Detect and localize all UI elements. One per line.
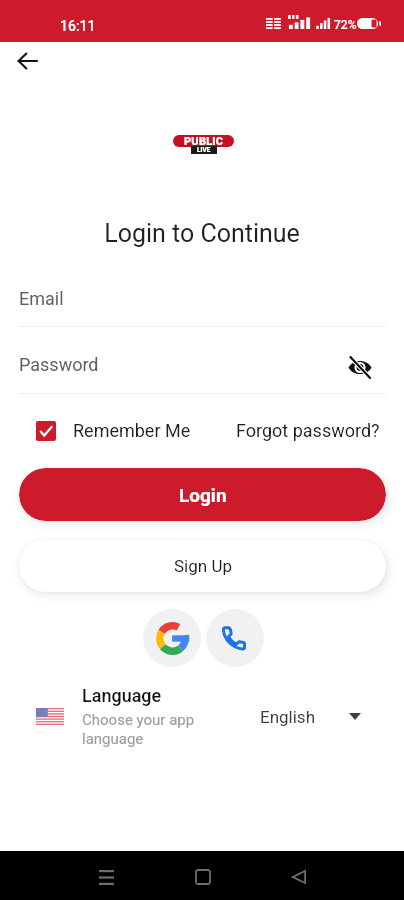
staticText: Forgot password? <box>236 420 380 441</box>
button[interactable]: Recent apps <box>82 853 130 900</box>
staticText: Login <box>179 484 227 506</box>
button[interactable]: Forgot password? <box>236 418 380 443</box>
staticText: Language <box>82 685 162 706</box>
staticText: 72% <box>334 18 357 32</box>
button[interactable]: Remember Me <box>36 420 191 441</box>
staticText: LIVE <box>197 146 211 154</box>
button[interactable]: Login <box>19 468 386 521</box>
staticText: Email <box>19 288 64 309</box>
staticText: Choose your app language <box>82 711 217 748</box>
button[interactable]: Sign in with phone <box>206 609 264 667</box>
staticText: PUBLIC <box>184 135 224 147</box>
button[interactable]: Show password <box>344 350 376 384</box>
staticText: 16:11 <box>60 18 96 34</box>
button[interactable]: Back <box>275 853 323 900</box>
staticText: Password <box>19 354 99 375</box>
button[interactable]: Home <box>179 853 227 900</box>
button[interactable]: Sign Up <box>19 540 386 592</box>
button[interactable]: Language <box>19 684 386 750</box>
button[interactable]: Sign in with Google <box>143 609 201 667</box>
button[interactable]: Back <box>7 41 47 81</box>
staticText: Remember Me <box>73 420 191 441</box>
staticText: Login to Continue <box>0 219 404 248</box>
staticText: Sign Up <box>174 556 232 576</box>
staticText: English <box>260 707 316 727</box>
